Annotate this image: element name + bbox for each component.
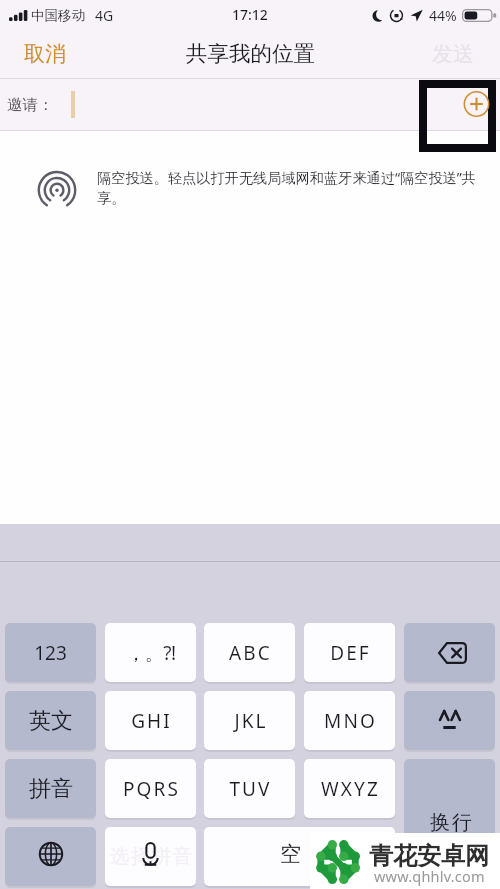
button[interactable]: 换行 — [404, 759, 495, 886]
staticText: MNO — [324, 708, 377, 734]
button[interactable]: 取消 — [0, 31, 86, 78]
button[interactable]: Voice input — [105, 827, 196, 886]
staticText: 取消 — [24, 41, 66, 67]
staticText: 空 — [280, 841, 301, 867]
button[interactable]: JKL — [204, 691, 295, 750]
button[interactable]: PQRS — [105, 759, 196, 818]
staticText: ABC — [229, 640, 272, 666]
staticText: 发送 — [432, 41, 474, 67]
staticText: JKL — [234, 708, 268, 734]
staticText: 4G — [95, 6, 114, 25]
button[interactable]: Delete — [404, 623, 495, 682]
button[interactable]: WXYZ — [304, 759, 395, 818]
staticText: www.qhhlv.com — [374, 866, 485, 886]
staticText: WXYZ — [321, 776, 380, 802]
staticText: 123 — [34, 640, 67, 666]
button[interactable]: 拼音 — [5, 759, 96, 818]
button[interactable] — [404, 691, 495, 750]
staticText: 邀请： — [7, 95, 54, 115]
button[interactable]: 123 — [5, 623, 96, 682]
button[interactable]: TUV — [204, 759, 295, 818]
button[interactable]: Add contact — [427, 88, 488, 144]
button[interactable]: 空 — [204, 827, 395, 886]
button[interactable]: ABC — [204, 623, 295, 682]
staticText: 青花安卓网 — [369, 841, 489, 871]
staticText: 隔空投送。轻点以打开无线局域网和蓝牙来通过“隔空投送”共享。 — [97, 168, 477, 207]
button[interactable]: GHI — [105, 691, 196, 750]
staticText: 换行 — [429, 810, 473, 835]
button[interactable]: Switch keyboard — [5, 827, 96, 886]
staticText: 44% — [429, 6, 457, 25]
staticText: 选择拼音 — [109, 844, 193, 869]
button[interactable]: 发送 — [412, 31, 500, 78]
button[interactable]: DEF — [304, 623, 395, 682]
staticText: 共享我的位置 — [186, 40, 315, 67]
staticText: 中国移动 — [31, 7, 85, 24]
staticText: 英文 — [29, 707, 73, 735]
staticText: GHI — [131, 708, 172, 734]
staticText: TUV — [229, 776, 272, 802]
button[interactable]: 英文 — [5, 691, 96, 750]
staticText: 拼音 — [29, 775, 73, 803]
staticText: PQRS — [123, 776, 180, 802]
staticText: DEF — [330, 640, 371, 666]
staticText: ，。?! — [126, 640, 176, 666]
button[interactable]: ，。?! — [105, 623, 196, 682]
button[interactable]: MNO — [304, 691, 395, 750]
staticText: 17:12 — [232, 5, 268, 24]
